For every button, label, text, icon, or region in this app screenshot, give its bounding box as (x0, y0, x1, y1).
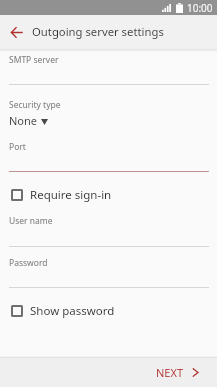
staticText: Password (9, 257, 48, 269)
staticText: 10:00 (187, 1, 213, 15)
button[interactable]: None (9, 113, 208, 128)
staticText: Outgoing server settings (32, 24, 164, 39)
staticText: Require sign-in (30, 187, 112, 203)
staticText: Show password (30, 303, 115, 319)
staticText: NEXT (156, 365, 184, 380)
staticText: None (9, 113, 38, 128)
button[interactable]: NEXT (156, 365, 199, 380)
staticText: Port (9, 141, 26, 153)
staticText: User name (9, 215, 53, 227)
button[interactable]: Require sign-in (11, 186, 208, 204)
staticText: Security type (9, 99, 61, 111)
button[interactable]: Navigate up (4, 20, 28, 44)
button[interactable]: Show password (11, 302, 208, 320)
staticText: SMTP server (9, 54, 59, 66)
